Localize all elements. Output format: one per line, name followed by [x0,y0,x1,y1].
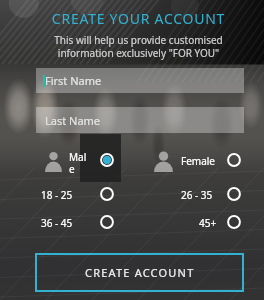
staticText: This will help us provide customised inf… [12,33,264,63]
staticText: Female [181,154,216,168]
staticText: Male [69,150,87,176]
button[interactable]: 18 - 25 [97,184,117,204]
button[interactable]: Female [224,150,244,170]
staticText: 18 - 25 [41,188,73,202]
staticText: 45+ [199,216,217,230]
staticText: CREATE ACCOUNT [85,265,195,280]
staticText: First Name [45,73,102,88]
staticText: CREATE YOUR ACCOUNT [12,9,264,28]
button[interactable]: Last Name [36,107,244,133]
button[interactable]: CREATE ACCOUNT [35,253,244,292]
staticText: Last Name [45,113,101,128]
button[interactable]: 36 - 45 [97,212,117,232]
staticText: 26 - 35 [181,188,213,202]
button[interactable]: Male [97,150,117,170]
button[interactable]: 45+ [224,212,244,232]
button[interactable]: First Name [36,68,244,93]
staticText: 36 - 45 [41,216,73,230]
button[interactable]: 26 - 35 [224,184,244,204]
